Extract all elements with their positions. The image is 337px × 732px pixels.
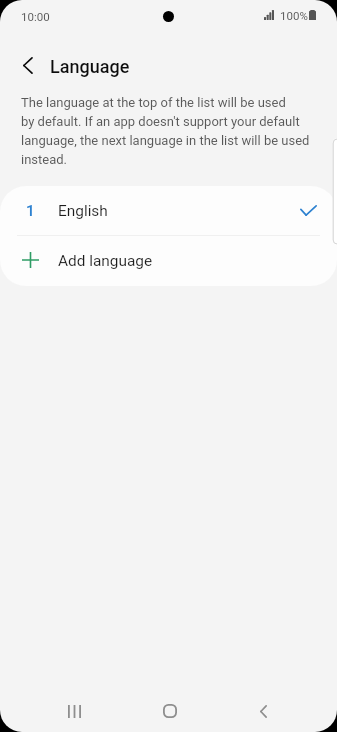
button[interactable]: Navigate up xyxy=(7,45,47,85)
button[interactable]: Add language xyxy=(0,236,337,286)
button[interactable]: Home xyxy=(146,690,194,732)
staticText: 1 xyxy=(26,202,35,220)
button[interactable]: Back xyxy=(239,690,287,732)
staticText: 100% xyxy=(280,9,308,22)
staticText: Add language xyxy=(58,252,153,270)
staticText: English xyxy=(58,202,108,220)
staticText: The language at the top of the list will… xyxy=(21,95,310,167)
button[interactable]: 1 xyxy=(0,186,337,235)
button[interactable]: Recent apps xyxy=(50,690,98,732)
staticText: 10:00 xyxy=(21,10,50,23)
staticText: Language xyxy=(50,56,130,77)
